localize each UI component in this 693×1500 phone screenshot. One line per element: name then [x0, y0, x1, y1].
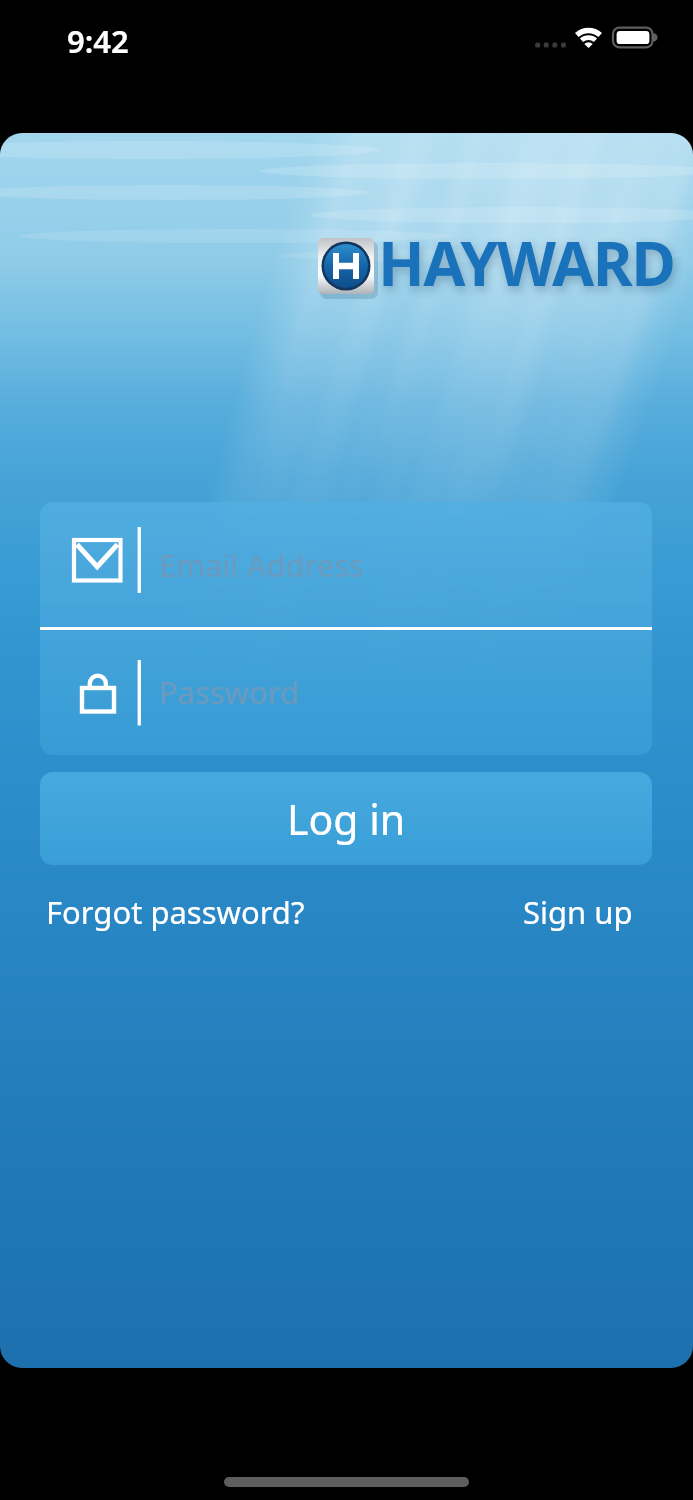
staticText: 9:42 — [67, 20, 129, 62]
button[interactable]: Password — [40, 629, 652, 755]
staticText: HAYWARD — [378, 221, 675, 304]
staticText: Log in — [287, 791, 406, 847]
button[interactable]: Log in — [40, 772, 652, 865]
button[interactable]: Email Address — [40, 502, 652, 628]
button[interactable]: Sign up — [523, 891, 633, 933]
staticText: Password — [159, 671, 300, 713]
staticText: Email Address — [159, 544, 364, 586]
button[interactable]: Forgot password? — [46, 891, 305, 933]
